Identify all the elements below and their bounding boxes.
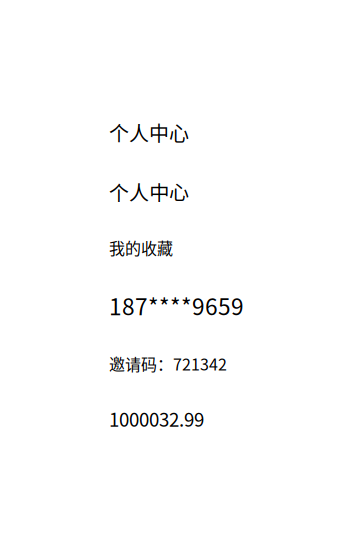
staticText: 个人中心 bbox=[109, 177, 189, 206]
staticText: 1000032.99 bbox=[109, 405, 204, 432]
staticText: 187****9659 bbox=[109, 289, 244, 322]
staticText: 我的收藏 bbox=[109, 236, 173, 259]
staticText: 个人中心 bbox=[109, 118, 189, 147]
staticText: 邀请码：721342 bbox=[109, 352, 227, 375]
